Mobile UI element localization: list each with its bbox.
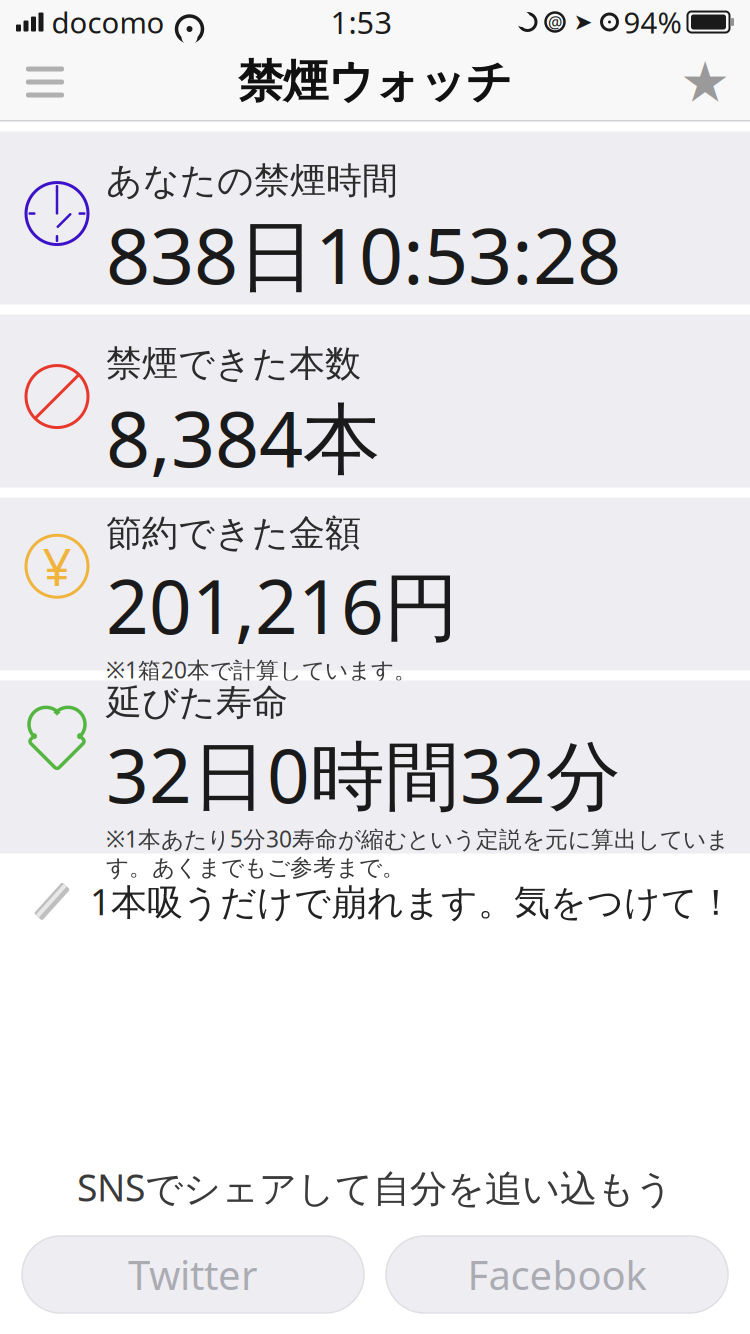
staticText: ¥ <box>42 533 71 600</box>
button[interactable]: Twitter <box>22 1236 364 1313</box>
staticText: 禁煙できた本数 <box>106 341 361 386</box>
staticText: 8,384本 <box>106 386 380 488</box>
staticText: 94% <box>623 2 681 41</box>
staticText: Facebook <box>467 1248 646 1301</box>
staticText: SNSでシェアして自分を追い込もう <box>77 1162 673 1212</box>
staticText: ※1箱20本で計算しています。 <box>106 655 417 685</box>
button[interactable]: Facebook <box>386 1236 728 1313</box>
staticText: @ <box>548 11 562 33</box>
staticText: 延びた寿命 <box>106 680 288 724</box>
staticText: Twitter <box>128 1248 258 1301</box>
staticText: ★ <box>680 50 730 114</box>
staticText: あなたの禁煙時間 <box>106 158 398 203</box>
staticText: 838日10:53:28 <box>106 203 621 305</box>
staticText: 節約できた金額 <box>106 511 361 555</box>
staticText: 201,216円 <box>106 555 459 655</box>
staticText: 禁煙ウォッチ <box>238 54 512 110</box>
staticText: docomo <box>51 2 164 41</box>
staticText: ➤ <box>573 9 592 35</box>
staticText: 1:53 <box>330 2 392 42</box>
staticText: ※1本あたり5分30寿命が縮むという定説を元に算出しています。あくまでもご参考ま… <box>106 824 729 882</box>
staticText: 1本吸うだけで崩れます。気をつけて！ <box>90 877 734 925</box>
button[interactable]: Menu <box>14 51 76 113</box>
button[interactable]: Favorite <box>674 51 736 113</box>
staticText: 32日0時間32分 <box>106 725 621 824</box>
